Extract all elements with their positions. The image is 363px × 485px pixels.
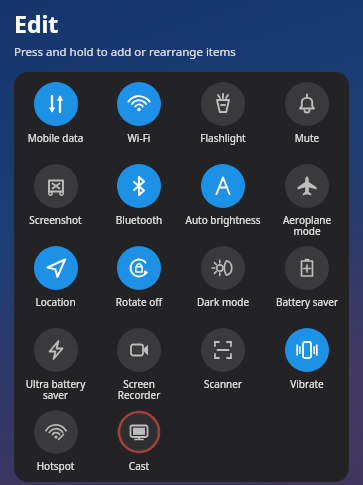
staticText: Location (16, 295, 95, 309)
button[interactable]: Battery saver (265, 244, 349, 326)
button[interactable]: Bluetooth (97, 162, 181, 244)
button[interactable]: Scanner (181, 326, 265, 408)
staticText: Hotspot (16, 459, 95, 473)
button[interactable]: Wi-Fi (97, 80, 181, 162)
staticText: Ultra battery saver (16, 377, 95, 402)
staticText: Screen Recorder (99, 377, 179, 402)
staticText: Auto brightness (183, 213, 263, 227)
button[interactable]: Hotspot (14, 408, 97, 482)
staticText: Mobile data (16, 131, 95, 145)
button[interactable]: Screen Recorder (97, 326, 181, 408)
staticText: Aeroplane mode (267, 213, 347, 238)
button[interactable]: Ultra battery saver (14, 326, 97, 408)
staticText: Edit (14, 8, 59, 39)
staticText: Mute (267, 131, 347, 145)
button[interactable]: Auto brightness (181, 162, 265, 244)
staticText: Bluetooth (99, 213, 179, 227)
staticText: Battery saver (267, 295, 347, 309)
button[interactable]: Screenshot (14, 162, 97, 244)
staticText: Scanner (183, 377, 263, 391)
button[interactable]: Vibrate (265, 326, 349, 408)
button[interactable]: Aeroplane mode (265, 162, 349, 244)
staticText: Vibrate (267, 377, 347, 391)
button[interactable]: Dark mode (181, 244, 265, 326)
staticText: Screenshot (16, 213, 95, 227)
button[interactable]: Flashlight (181, 80, 265, 162)
button[interactable]: Cast (97, 408, 181, 482)
button[interactable]: Mute (265, 80, 349, 162)
button[interactable]: Mobile data (14, 80, 97, 162)
staticText: Cast (99, 459, 179, 473)
staticText: Dark mode (183, 295, 263, 309)
button[interactable]: Location (14, 244, 97, 326)
staticText: Wi-Fi (99, 131, 179, 145)
staticText: Rotate off (99, 295, 179, 309)
staticText: Flashlight (183, 131, 263, 145)
button[interactable]: Rotate off (97, 244, 181, 326)
staticText: Press and hold to add or rearrange items (14, 44, 236, 60)
